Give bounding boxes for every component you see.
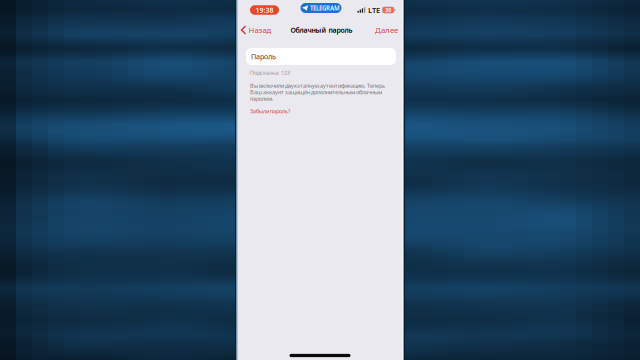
- staticText: Далее: [375, 25, 398, 35]
- button[interactable]: Пароль: [246, 48, 396, 65]
- button[interactable]: Далее: [372, 23, 398, 37]
- staticText: паролем.: [250, 95, 274, 102]
- staticText: Вы включили двухэтапную аутентификацию. …: [250, 82, 385, 89]
- staticText: Облачный пароль: [290, 25, 352, 35]
- button[interactable]: Забыли пароль?: [250, 107, 390, 115]
- staticText: Ваш аккаунт защищён дополнительным облач…: [250, 88, 382, 96]
- staticText: Назад: [248, 25, 271, 35]
- staticText: Пароль: [251, 52, 276, 61]
- staticText: Забыли пароль?: [250, 107, 290, 115]
- staticText: 30: [385, 6, 391, 13]
- staticText: LTE: [368, 5, 380, 15]
- staticText: Подсказка: 123: [250, 69, 290, 76]
- staticText: TELEGRAM: [310, 4, 340, 12]
- button[interactable]: Назад: [241, 23, 277, 37]
- staticText: 19:38: [255, 5, 273, 15]
